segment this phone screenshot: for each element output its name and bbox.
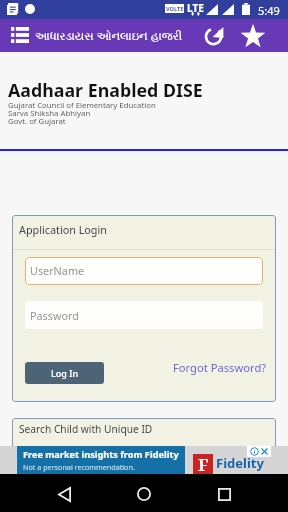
staticText: LTE	[187, 1, 204, 15]
button[interactable]: Recent apps	[202, 475, 246, 512]
button[interactable]: Refresh	[197, 19, 230, 52]
button[interactable]: Search Child with Unique ID	[12, 418, 276, 448]
button[interactable]: UserName	[25, 257, 263, 285]
staticText: 5:49	[258, 3, 280, 18]
button[interactable]: Home	[122, 475, 166, 512]
staticText: Sarva Shiksha Abhiyan	[8, 108, 91, 119]
staticText: Forgot Password?	[173, 360, 267, 375]
staticText: Password	[30, 308, 79, 323]
staticText: F	[198, 453, 209, 473]
staticText: Search Child with Unique ID	[19, 422, 153, 436]
staticText: Log In	[51, 367, 79, 379]
staticText: Aadhaar Enabled DISE	[8, 78, 203, 102]
staticText: આધારડાયસ ઓનલાઇન હાજરી	[35, 28, 183, 44]
staticText: Free market insights from Fidelity	[23, 448, 179, 461]
staticText: VOLTE	[166, 5, 184, 13]
button[interactable]: Favorite	[236, 19, 269, 52]
staticText: Fidelity	[216, 454, 264, 472]
button[interactable]: Forgot Password?	[171, 358, 269, 377]
button[interactable]: Back	[42, 475, 86, 512]
staticText: UserName	[30, 263, 85, 278]
button[interactable]: Log In	[25, 362, 104, 384]
staticText: Not a personal recommendation.	[23, 462, 135, 472]
staticText: Gujarat Council of Elementary Education	[8, 100, 156, 111]
staticText: Govt. of Gujarat	[8, 116, 66, 127]
staticText: Application Login	[19, 222, 107, 237]
button[interactable]: Menu	[4, 19, 36, 51]
button[interactable]: Password	[25, 301, 263, 329]
